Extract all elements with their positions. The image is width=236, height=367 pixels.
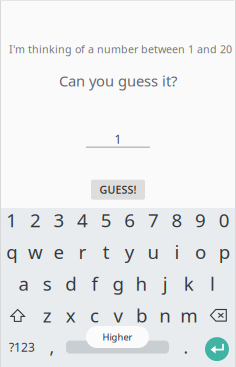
button[interactable]: e [47,236,71,268]
button[interactable]: m [177,299,201,331]
staticText: v [113,303,122,328]
staticText: n [159,303,171,328]
staticText: . [183,336,188,359]
button[interactable]: Enter [202,333,232,365]
button[interactable]: x [59,299,83,331]
button[interactable]: c [83,299,106,331]
staticText: a [19,271,29,296]
button[interactable]: z [35,299,59,331]
button[interactable]: g [106,268,130,299]
staticText: 1 [6,207,17,232]
button[interactable]: o [189,236,212,268]
button[interactable]: l [201,268,224,299]
staticText: ?123 [9,339,35,355]
button[interactable]: 9 [189,204,212,236]
button[interactable]: ?123 [0,331,44,363]
button[interactable]: , [41,331,63,363]
staticText: 6 [124,207,135,232]
staticText: I'm thinking of a number between 1 and 2… [9,42,232,56]
staticText: g [112,271,123,296]
staticText: i [174,239,179,264]
button[interactable]: Backspace [201,299,236,331]
staticText: 7 [148,207,159,232]
button[interactable]: p [212,236,236,268]
button[interactable]: w [24,236,47,268]
button[interactable]: v [106,299,130,331]
staticText: u [147,239,159,264]
button[interactable]: a [12,268,35,299]
staticText: Can you guess it? [59,71,177,91]
staticText: k [184,271,194,296]
button[interactable]: d [59,268,83,299]
staticText: 5 [101,207,112,232]
staticText: c [90,303,99,328]
staticText: Higher [102,331,132,343]
staticText: e [53,239,64,264]
button[interactable]: 7 [142,204,165,236]
staticText: 9 [195,207,206,232]
button[interactable]: k [177,268,201,299]
button[interactable]: 4 [71,204,94,236]
button[interactable]: f [83,268,106,299]
staticText: y [125,239,135,264]
button[interactable]: y [118,236,142,268]
staticText: h [136,271,148,296]
staticText: 4 [77,207,88,232]
button[interactable]: 8 [165,204,189,236]
staticText: p [219,239,230,264]
staticText: j [163,271,168,296]
staticText: b [136,303,147,328]
button[interactable]: j [153,268,177,299]
button[interactable]: 6 [118,204,142,236]
button[interactable]: s [35,268,59,299]
button[interactable]: q [0,236,24,268]
staticText: f [91,271,97,296]
staticText: o [195,239,206,264]
staticText: GUESS! [99,183,136,197]
staticText: d [65,271,76,296]
button[interactable]: Space [66,331,169,363]
staticText: 1 [114,131,121,147]
staticText: 2 [30,207,41,232]
button[interactable]: 1 [0,204,24,236]
staticText: t [103,239,110,264]
staticText: 0 [219,207,230,232]
button[interactable]: h [130,268,153,299]
staticText: x [66,303,76,328]
button[interactable]: t [94,236,118,268]
button[interactable]: b [130,299,153,331]
button[interactable]: r [71,236,94,268]
staticText: 3 [53,207,64,232]
button[interactable]: n [153,299,177,331]
button[interactable]: i [165,236,189,268]
staticText: m [180,303,197,328]
staticText: , [49,336,54,359]
staticText: l [210,271,215,296]
staticText: r [79,239,87,264]
staticText: s [43,271,52,296]
button[interactable]: GUESS! [91,180,145,200]
button[interactable]: Shift [0,299,35,331]
button[interactable]: u [142,236,165,268]
button[interactable]: 0 [212,204,236,236]
staticText: z [43,303,52,328]
button[interactable]: 2 [24,204,47,236]
button[interactable]: 3 [47,204,71,236]
button[interactable]: 5 [94,204,118,236]
button[interactable]: . [175,331,197,363]
staticText: q [6,239,17,264]
staticText: 8 [171,207,182,232]
staticText: w [28,239,43,264]
